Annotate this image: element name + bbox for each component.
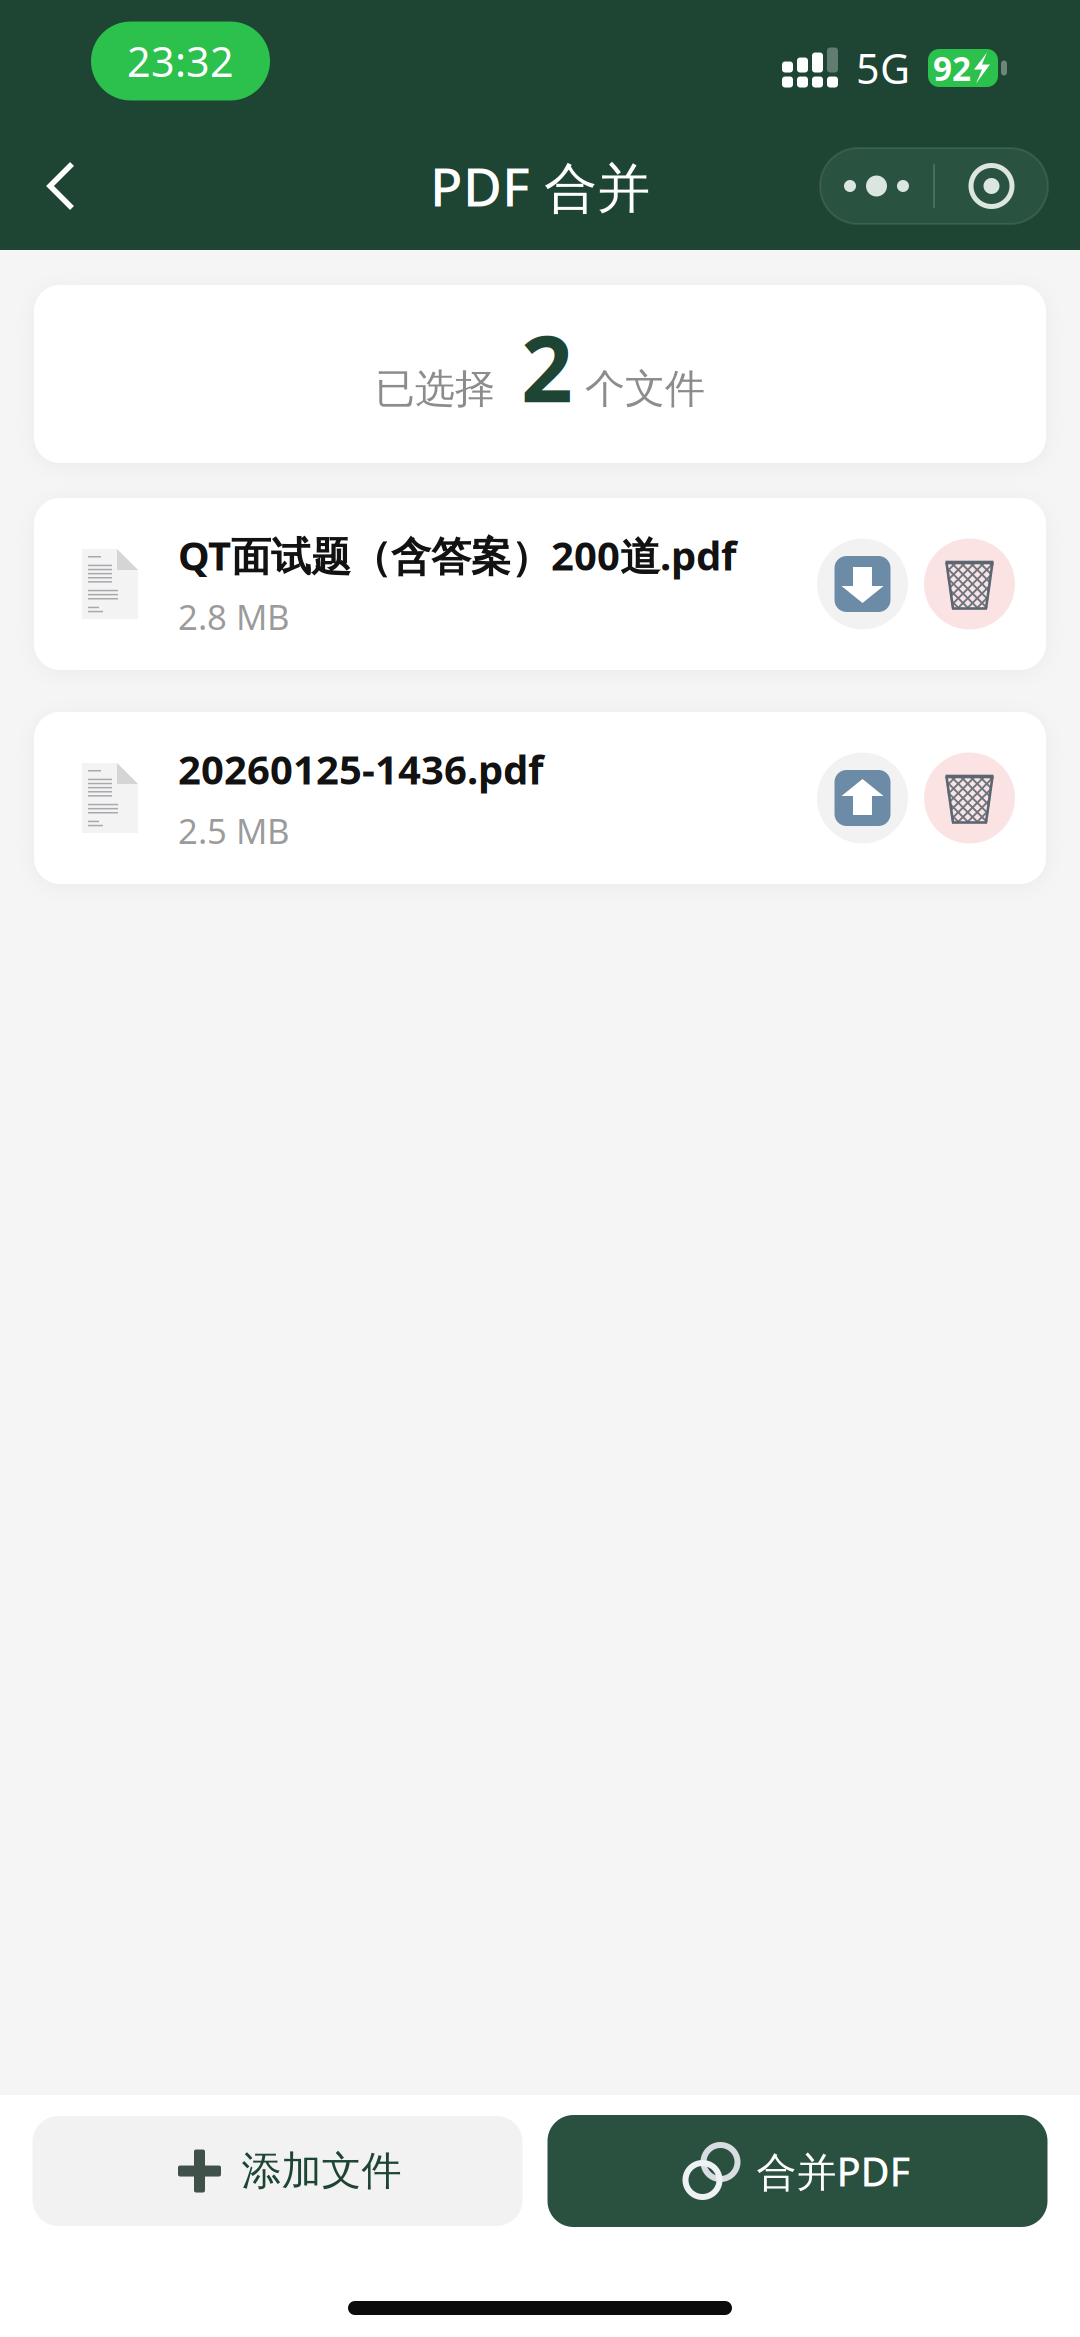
button[interactable]: 20260125-1436.pdf [34,712,1046,884]
staticText: 已选择 [375,364,495,413]
button[interactable]: Move down [817,538,908,629]
staticText: 20260125-1436.pdf [178,742,543,795]
button[interactable]: 添加文件 [32,2116,522,2226]
button[interactable]: Back [15,140,107,232]
button[interactable]: QT面试题（含答案）200道.pdf [34,498,1046,670]
staticText: 92 [933,46,971,90]
staticText: 个文件 [585,364,705,413]
staticText: 5G [856,41,910,95]
staticText: 添加文件 [241,2146,401,2195]
button[interactable]: Delete [924,752,1015,843]
staticText: 23:32 [127,34,234,88]
staticText: PDF 合并 [430,150,650,222]
staticText: 2 [521,307,573,427]
button[interactable]: Move up [817,752,908,843]
staticText: 合并PDF [756,2144,910,2197]
button[interactable]: Delete [924,538,1015,629]
staticText: 2.8 MB [178,594,290,640]
staticText: QT面试题（含答案）200道.pdf [178,528,736,582]
staticText: 2.5 MB [178,807,290,853]
button[interactable]: 合并PDF [547,2115,1047,2227]
button[interactable]: More options [820,148,1048,224]
